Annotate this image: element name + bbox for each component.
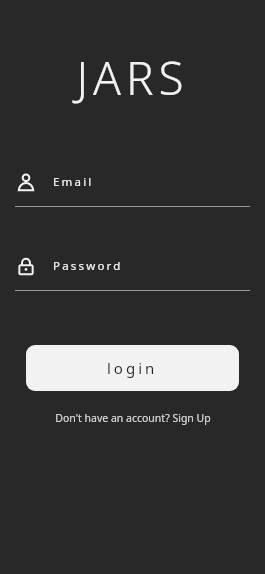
button[interactable]: login	[26, 345, 239, 391]
other: Email	[16, 172, 36, 192]
button[interactable]: Email	[0, 172, 265, 207]
staticText: Password	[53, 258, 123, 274]
button[interactable]: Don't have an account? Sign Up	[47, 407, 219, 429]
other: Password	[16, 256, 36, 276]
staticText: Email	[53, 174, 94, 190]
staticText: login	[107, 358, 158, 378]
staticText: JARS	[76, 46, 189, 109]
button[interactable]: Password	[0, 256, 265, 291]
staticText: Don't have an account? Sign Up	[55, 411, 211, 425]
